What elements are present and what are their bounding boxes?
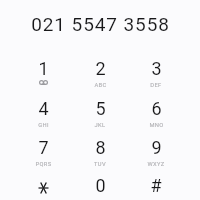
button[interactable]: Key 6 xyxy=(129,98,183,136)
staticText: PQRS xyxy=(35,161,52,168)
staticText: 0 xyxy=(95,175,106,196)
button[interactable]: Key 9 xyxy=(129,137,183,175)
staticText: 8 xyxy=(95,137,106,158)
button[interactable]: Key 3 xyxy=(129,58,183,96)
button[interactable]: Key 7 xyxy=(16,137,70,175)
staticText: JKL xyxy=(94,122,106,129)
button[interactable]: Pound key xyxy=(129,175,183,200)
button[interactable]: Voicemail, key 1 xyxy=(16,58,70,96)
staticText: TUV xyxy=(94,161,106,168)
staticText: GHI xyxy=(38,122,49,129)
staticText: 7 xyxy=(38,137,49,158)
button[interactable]: Key 4 xyxy=(16,98,70,136)
staticText: MNO xyxy=(149,122,164,129)
staticText: DEF xyxy=(150,82,162,89)
staticText: 4 xyxy=(38,98,49,119)
button[interactable]: Key 8 xyxy=(73,137,127,175)
staticText: 6 xyxy=(151,98,162,119)
staticText: # xyxy=(150,175,162,196)
staticText: 1 xyxy=(38,58,49,79)
staticText: WXYZ xyxy=(147,161,165,168)
staticText: 9 xyxy=(151,137,162,158)
staticText: 5 xyxy=(95,98,106,119)
staticText: 2 xyxy=(95,58,106,79)
staticText: 3 xyxy=(151,58,162,79)
button[interactable]: Key 5 xyxy=(73,98,127,136)
button[interactable]: 021 5547 3558 xyxy=(31,13,170,35)
staticText: ABC xyxy=(94,82,107,89)
button[interactable]: Key 2 xyxy=(73,58,127,96)
button[interactable]: Key 0 xyxy=(73,175,127,200)
staticText: 021 5547 3558 xyxy=(31,13,170,35)
button[interactable]: Star key xyxy=(16,175,70,200)
